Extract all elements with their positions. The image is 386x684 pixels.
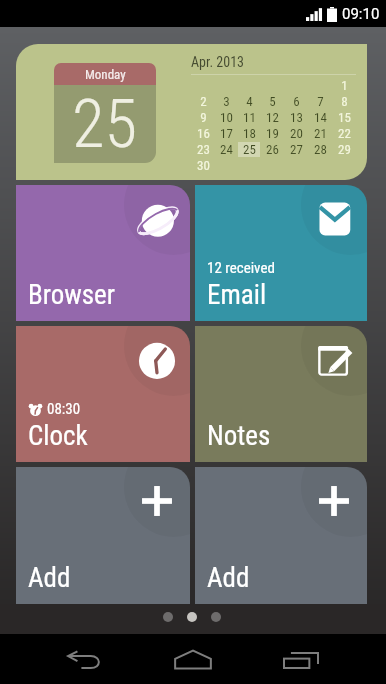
staticText: Clock bbox=[28, 420, 88, 452]
staticText: Apr. 2013 bbox=[191, 54, 244, 70]
staticText: 7 bbox=[317, 94, 324, 109]
staticText: 20 bbox=[290, 126, 303, 141]
staticText: 24 bbox=[220, 142, 233, 157]
staticText: 8 bbox=[341, 94, 348, 109]
staticText: Notes bbox=[207, 420, 271, 452]
staticText: 5 bbox=[269, 94, 276, 109]
staticText: 26 bbox=[266, 142, 279, 157]
staticText: Monday bbox=[85, 67, 126, 82]
staticText: 21 bbox=[314, 126, 327, 141]
staticText: 09:10 bbox=[342, 5, 380, 23]
staticText: 1 bbox=[341, 78, 348, 93]
staticText: Add bbox=[28, 562, 71, 594]
button[interactable]: 08:30 bbox=[16, 326, 190, 462]
staticText: 11 bbox=[243, 110, 256, 125]
staticText: Add bbox=[207, 562, 250, 594]
staticText: 13 bbox=[290, 110, 303, 125]
button[interactable]: Browser bbox=[16, 185, 190, 321]
staticText: 08:30 bbox=[47, 400, 81, 418]
button[interactable]: Recent apps bbox=[247, 634, 355, 684]
staticText: 19 bbox=[266, 126, 279, 141]
staticText: 3 bbox=[223, 94, 230, 109]
staticText: 25 bbox=[72, 85, 138, 163]
staticText: 12 received bbox=[207, 259, 275, 277]
staticText: 28 bbox=[314, 142, 327, 157]
staticText: 25 bbox=[243, 142, 256, 157]
staticText: 16 bbox=[197, 126, 210, 141]
button[interactable]: Back bbox=[31, 634, 139, 684]
staticText: 23 bbox=[197, 142, 210, 157]
staticText: 29 bbox=[338, 142, 351, 157]
button[interactable]: Monday bbox=[16, 44, 367, 180]
staticText: 18 bbox=[243, 126, 256, 141]
staticText: 30 bbox=[197, 158, 210, 173]
staticText: 15 bbox=[338, 110, 351, 125]
staticText: 22 bbox=[338, 126, 351, 141]
staticText: 12 bbox=[266, 110, 279, 125]
staticText: 10 bbox=[220, 110, 233, 125]
staticText: 17 bbox=[220, 126, 233, 141]
staticText: 9 bbox=[200, 110, 207, 125]
button[interactable]: 12 received bbox=[195, 185, 367, 321]
staticText: 14 bbox=[314, 110, 327, 125]
staticText: 2 bbox=[200, 94, 207, 109]
button[interactable]: Add bbox=[195, 467, 367, 604]
staticText: Email bbox=[207, 279, 267, 311]
button[interactable]: Add bbox=[16, 467, 190, 604]
button[interactable]: Home bbox=[139, 634, 247, 684]
staticText: 6 bbox=[293, 94, 300, 109]
button[interactable]: Notes bbox=[195, 326, 367, 462]
staticText: 27 bbox=[290, 142, 303, 157]
staticText: 4 bbox=[246, 94, 253, 109]
staticText: Browser bbox=[28, 279, 115, 311]
